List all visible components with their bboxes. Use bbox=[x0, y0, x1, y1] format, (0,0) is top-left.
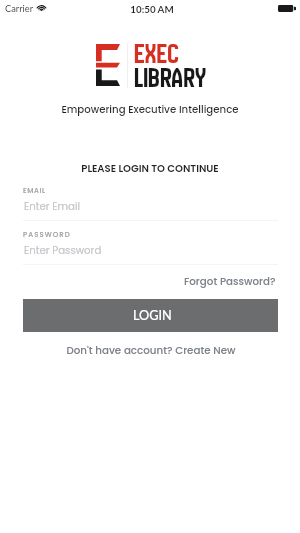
staticText: LOGIN bbox=[133, 307, 172, 322]
staticText: PASSWORD bbox=[23, 230, 71, 240]
button[interactable]: Enter Password bbox=[23, 241, 278, 265]
staticText: LIBRARY bbox=[134, 60, 207, 95]
staticText: PLEASE LOGIN TO CONTINUE bbox=[0, 161, 300, 175]
staticText: 10:50 AM bbox=[2, 3, 300, 15]
button[interactable]: Forgot Password? bbox=[178, 272, 276, 290]
staticText: Enter Password bbox=[24, 243, 102, 257]
staticText: Enter Email bbox=[24, 199, 80, 213]
staticText: Forgot Password? bbox=[184, 274, 276, 288]
button[interactable]: LOGIN bbox=[23, 299, 278, 332]
staticText: EXEC bbox=[134, 36, 180, 71]
staticText: Empowering Executive Intelligence bbox=[0, 102, 300, 116]
staticText: EMAIL bbox=[23, 186, 46, 196]
button[interactable]: Don't have account? Create New bbox=[1, 343, 300, 357]
staticText: Carrier bbox=[5, 3, 34, 14]
button[interactable]: Enter Email bbox=[23, 197, 278, 221]
